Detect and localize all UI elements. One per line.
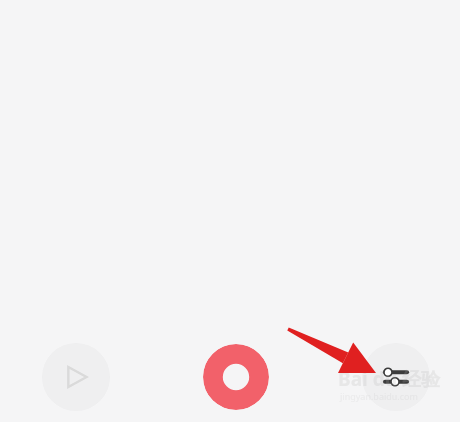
staticText: jingyan.baidu.com [340, 390, 418, 402]
button[interactable]: Settings [362, 343, 430, 411]
staticText: Bai du 经验 [338, 366, 440, 392]
button[interactable]: Record [203, 344, 269, 410]
button[interactable]: Play preview [42, 343, 110, 411]
